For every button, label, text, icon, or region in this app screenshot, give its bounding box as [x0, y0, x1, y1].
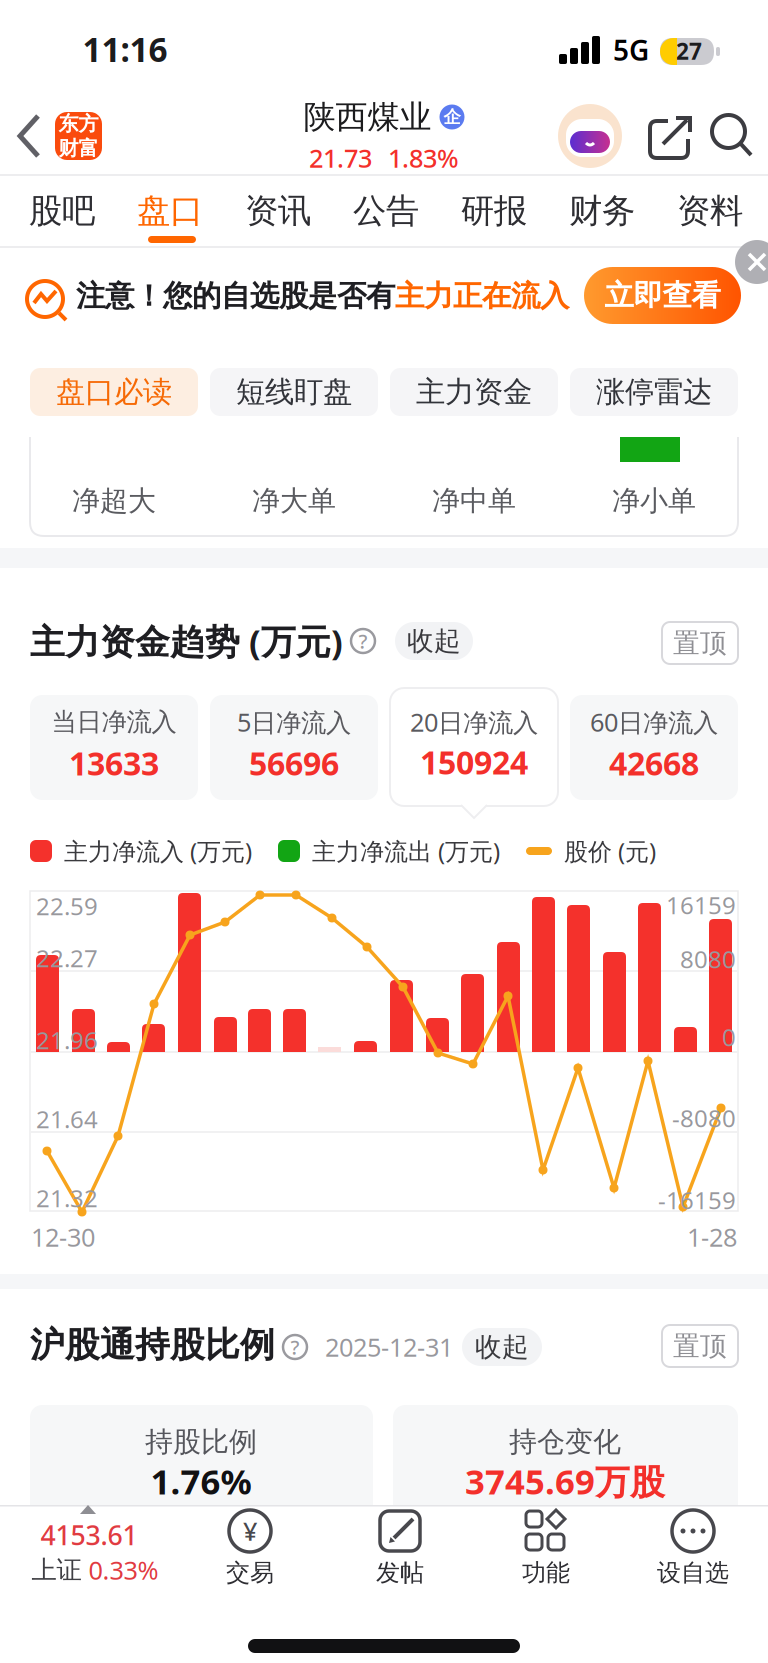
staticText: 12-30: [31, 1220, 95, 1254]
staticText: 盘口必读: [56, 374, 172, 410]
button[interactable]: 股吧: [8, 186, 116, 236]
button[interactable]: [0, 0, 768, 1663]
staticText: 股吧: [29, 190, 95, 231]
button[interactable]: 设自选: [623, 1508, 763, 1587]
staticText: 盘口: [137, 190, 203, 231]
button[interactable]: [0, 0, 768, 1663]
button[interactable]: 5日净流入: [210, 695, 378, 800]
staticText: 净小单: [612, 484, 696, 518]
staticText: 主力净流出 (万元): [312, 835, 500, 867]
staticText: 股价 (元): [564, 835, 656, 867]
staticText: 主力正在流入: [395, 278, 569, 314]
staticText: 净大单: [252, 484, 336, 518]
staticText: 1.76%: [150, 1458, 251, 1504]
staticText: 4153.61: [40, 1517, 137, 1553]
button[interactable]: 立即查看: [584, 267, 741, 324]
staticText: 20日净流入: [410, 705, 538, 739]
button[interactable]: [558, 104, 622, 168]
staticText: 上证: [31, 1554, 81, 1585]
staticText: 立即查看: [604, 277, 720, 313]
staticText: 发帖: [376, 1558, 424, 1587]
staticText: 60日净流入: [590, 705, 718, 739]
staticText: 16159: [666, 889, 736, 921]
staticText: 企: [443, 106, 460, 128]
staticText: 主力资金趋势 (万元): [30, 618, 343, 664]
button[interactable]: 涨停雷达: [570, 368, 738, 416]
staticText: 财务: [569, 190, 635, 231]
staticText: 13633: [69, 742, 159, 784]
staticText: 5G: [613, 31, 649, 69]
button[interactable]: ¥: [180, 1508, 320, 1587]
staticText: 21.96: [36, 1024, 98, 1056]
button[interactable]: 东方: [55, 112, 102, 160]
button[interactable]: [0, 0, 768, 1663]
staticText: 短线盯盘: [236, 374, 352, 410]
button[interactable]: 资讯: [224, 186, 332, 236]
staticText: 56696: [249, 742, 339, 784]
staticText: 资讯: [245, 190, 311, 231]
staticText: ¥: [243, 1514, 257, 1548]
staticText: 置顶: [673, 627, 727, 659]
staticText: 1-28: [687, 1220, 737, 1254]
staticText: 5日净流入: [237, 705, 351, 739]
staticText: 东方: [58, 111, 98, 136]
staticText: 22.27: [36, 942, 98, 974]
staticText: 公告: [353, 190, 419, 231]
staticText: 0.33%: [88, 1553, 158, 1587]
staticText: 8080: [680, 943, 736, 975]
staticText: 收起: [475, 1331, 529, 1363]
staticText: 置顶: [673, 1330, 727, 1362]
staticText: 财富: [58, 136, 98, 161]
staticText: 0: [722, 1021, 736, 1053]
staticText: 净中单: [432, 484, 516, 518]
button[interactable]: 财务: [548, 186, 656, 236]
staticText: 交易: [226, 1558, 274, 1587]
staticText: 42668: [609, 742, 699, 784]
staticText: 沪股通持股比例: [30, 1324, 275, 1366]
staticText: 1.83%: [388, 141, 459, 175]
staticText: -8080: [672, 1102, 736, 1134]
button[interactable]: 研报: [440, 186, 548, 236]
button[interactable]: 60日净流入: [570, 695, 738, 800]
staticText: 设自选: [657, 1558, 729, 1587]
staticText: 3745.69万股: [465, 1458, 665, 1504]
button[interactable]: 4153.61: [0, 1504, 190, 1594]
button[interactable]: 公告: [332, 186, 440, 236]
button[interactable]: 功能: [476, 1508, 616, 1587]
button[interactable]: 当日净流入: [30, 695, 198, 800]
staticText: 涨停雷达: [596, 374, 712, 410]
staticText: 收起: [407, 625, 461, 657]
button[interactable]: 收起: [395, 622, 473, 660]
staticText: 持股比例: [145, 1425, 257, 1459]
staticText: 150924: [420, 741, 528, 783]
button[interactable]: 发帖: [330, 1508, 470, 1587]
staticText: 2025-12-31: [325, 1330, 453, 1364]
staticText: 27: [676, 36, 702, 66]
staticText: 当日净流入: [51, 706, 176, 737]
staticText: 持仓变化: [509, 1425, 621, 1459]
staticText: 注意！您的自选股是否有: [76, 278, 395, 314]
button[interactable]: 置顶: [662, 622, 738, 664]
button[interactable]: 盘口必读: [30, 368, 198, 416]
staticText: 资料: [677, 190, 743, 231]
staticText: 净超大: [72, 484, 156, 518]
staticText: 21.32: [36, 1182, 98, 1214]
button[interactable]: 主力资金: [390, 368, 558, 416]
staticText: ?: [358, 628, 367, 654]
button[interactable]: 盘口: [116, 186, 224, 236]
staticText: 陕西煤业: [303, 97, 431, 137]
button[interactable]: 20日净流入: [390, 688, 558, 806]
button[interactable]: [735, 240, 768, 284]
button[interactable]: 资料: [656, 186, 764, 236]
staticText: 21.64: [36, 1103, 98, 1135]
button[interactable]: 收起: [462, 1328, 542, 1366]
button[interactable]: 置顶: [662, 1325, 738, 1367]
staticText: 研报: [461, 190, 527, 231]
staticText: ?: [290, 1334, 299, 1360]
staticText: 主力资金: [416, 374, 532, 410]
staticText: 11:16: [82, 27, 167, 71]
staticText: 功能: [522, 1558, 570, 1587]
staticText: -16159: [658, 1184, 736, 1216]
button[interactable]: 短线盯盘: [210, 368, 378, 416]
staticText: 22.59: [36, 890, 98, 922]
